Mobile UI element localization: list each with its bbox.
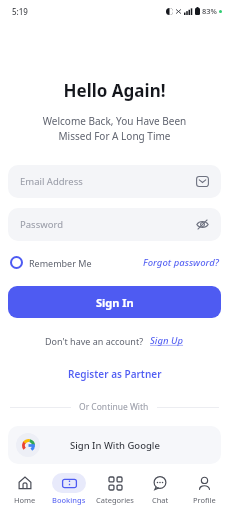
button[interactable]: Forgot password? — [143, 253, 219, 272]
other: Google — [22, 439, 35, 452]
staticText: Password — [20, 218, 63, 231]
other: Home — [18, 476, 32, 490]
staticText: Categories — [96, 495, 134, 505]
button[interactable]: Email Address — [8, 165, 221, 198]
other: Chat — [153, 476, 167, 490]
button[interactable]: Chat — [141, 470, 179, 508]
staticText: 83% — [202, 6, 217, 16]
other: Profile — [198, 477, 211, 490]
staticText: Register as Partner — [68, 367, 162, 381]
button[interactable]: Password — [8, 208, 221, 241]
staticText: Forgot password? — [143, 256, 219, 269]
staticText: Sign In — [96, 295, 134, 310]
other: Show password — [196, 218, 209, 231]
staticText: Don't have an account? — [45, 335, 144, 347]
button[interactable]: Bookings — [50, 470, 88, 508]
staticText: Home — [14, 495, 36, 505]
staticText: Sign In With Google — [70, 439, 160, 452]
other: Email — [196, 175, 209, 188]
button[interactable]: Register as Partner — [64, 363, 166, 385]
staticText: Hello Again! — [0, 79, 229, 102]
other: Categories — [109, 477, 122, 490]
staticText: Remember Me — [29, 257, 92, 269]
button[interactable]: Sign In — [8, 286, 221, 318]
button[interactable]: Categories — [94, 470, 136, 508]
staticText: Chat — [152, 495, 169, 505]
button[interactable]: Remember Me — [10, 253, 92, 272]
button[interactable]: Sign Up — [150, 334, 184, 347]
button[interactable]: Google — [8, 426, 221, 464]
staticText: Profile — [193, 495, 216, 505]
staticText: Bookings — [52, 495, 86, 505]
staticText: Or Continue With — [79, 401, 149, 413]
button[interactable]: Home — [6, 470, 44, 508]
staticText: 5:19 — [12, 6, 28, 17]
staticText: Email Address — [20, 175, 83, 188]
staticText: Welcome Back, You Have Been Missed For A… — [0, 114, 229, 143]
staticText: Sign Up — [150, 334, 184, 347]
other: Bookings — [62, 476, 77, 491]
button[interactable]: Profile — [185, 470, 223, 508]
